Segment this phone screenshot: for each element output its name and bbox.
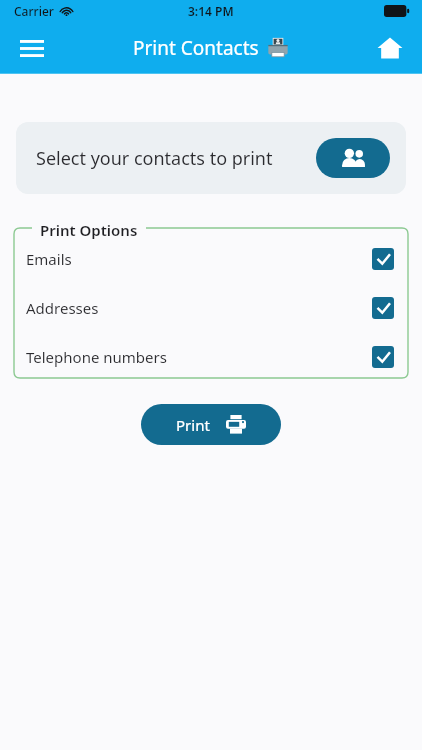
staticText: Addresses [26,298,99,318]
button[interactable]: Telephone numbers [26,340,394,373]
staticText: Select your contacts to print [36,146,304,171]
staticText: Telephone numbers [26,347,167,367]
staticText: Emails [26,249,72,269]
staticText: Print Contacts [133,35,259,61]
button[interactable]: Emails [26,242,394,275]
button[interactable]: Menu [10,26,54,70]
staticText: Print Options [40,220,138,240]
button[interactable]: Home [368,26,412,70]
button[interactable]: Addresses [26,291,394,324]
button[interactable]: Select your contacts to print [16,122,406,194]
staticText: Print [176,415,210,435]
staticText: Carrier [14,3,54,19]
staticText: 3:14 PM [188,3,234,19]
button[interactable]: Select contacts [316,138,390,178]
button[interactable]: Print [141,404,281,445]
